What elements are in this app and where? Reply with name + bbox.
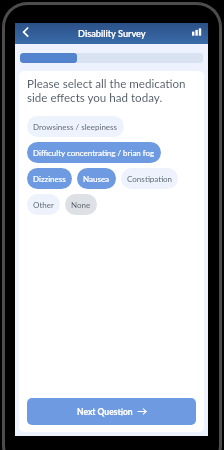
button[interactable]: Constipation — [121, 168, 178, 189]
button[interactable]: Difficulty concentrating / brian fog — [27, 142, 161, 163]
button[interactable]: Drowsiness / sleepiness — [27, 116, 124, 137]
button[interactable]: None — [65, 194, 97, 215]
staticText: Please select all the medication side ef… — [27, 77, 196, 104]
button[interactable]: Next Question — [27, 398, 196, 425]
button[interactable]: Dizziness — [27, 168, 72, 189]
button[interactable]: Nausea — [77, 168, 116, 189]
staticText: None — [71, 200, 91, 210]
staticText: Difficulty concentrating / brian fog — [33, 148, 155, 158]
staticText: Drowsiness / sleepiness — [33, 122, 118, 132]
staticText: Nausea — [83, 174, 110, 184]
staticText: Other — [33, 200, 54, 210]
button[interactable]: Other — [27, 194, 60, 215]
button[interactable]: Back — [16, 23, 32, 41]
staticText: Next Question — [77, 407, 133, 417]
staticText: Constipation — [127, 174, 172, 184]
staticText: Disability Survey — [78, 28, 146, 39]
staticText: Dizziness — [33, 174, 66, 184]
other: Signal strength — [191, 25, 203, 37]
